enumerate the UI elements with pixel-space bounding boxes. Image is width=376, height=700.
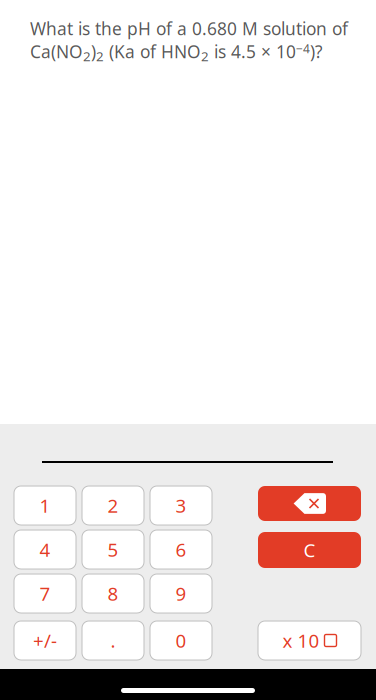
- button[interactable]: Delete: [258, 486, 361, 521]
- button[interactable]: 1: [14, 486, 76, 525]
- button[interactable]: 4: [14, 530, 76, 569]
- staticText: 7: [39, 581, 50, 606]
- button[interactable]: x 10: [258, 621, 361, 660]
- staticText: 8: [107, 581, 118, 606]
- staticText: +/-: [33, 628, 57, 653]
- staticText: 3: [175, 493, 186, 518]
- button[interactable]: C: [258, 532, 361, 568]
- staticText: .: [110, 628, 115, 653]
- staticText: What is the pH of a 0.680 M solution of …: [30, 17, 348, 65]
- button[interactable]: 7: [14, 574, 76, 613]
- staticText: 4: [39, 537, 50, 562]
- button[interactable]: 0: [150, 621, 212, 660]
- button[interactable]: 8: [82, 574, 144, 613]
- button[interactable]: 2: [82, 486, 144, 525]
- staticText: 1: [39, 493, 50, 518]
- staticText: C: [303, 538, 315, 562]
- button[interactable]: 9: [150, 574, 212, 613]
- staticText: 9: [175, 581, 186, 606]
- button[interactable]: +/-: [14, 621, 76, 660]
- button[interactable]: 6: [150, 530, 212, 569]
- staticText: 6: [175, 537, 186, 562]
- button[interactable]: 5: [82, 530, 144, 569]
- staticText: x 10: [282, 628, 319, 653]
- button[interactable]: .: [82, 621, 144, 660]
- button[interactable]: 3: [150, 486, 212, 525]
- staticText: 0: [175, 628, 186, 653]
- staticText: 5: [107, 537, 118, 562]
- staticText: 2: [107, 493, 118, 518]
